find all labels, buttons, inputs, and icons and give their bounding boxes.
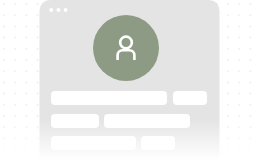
button[interactable] xyxy=(173,91,207,105)
button[interactable]: Profile avatar xyxy=(93,15,159,81)
button[interactable]: Window controls xyxy=(48,6,72,14)
